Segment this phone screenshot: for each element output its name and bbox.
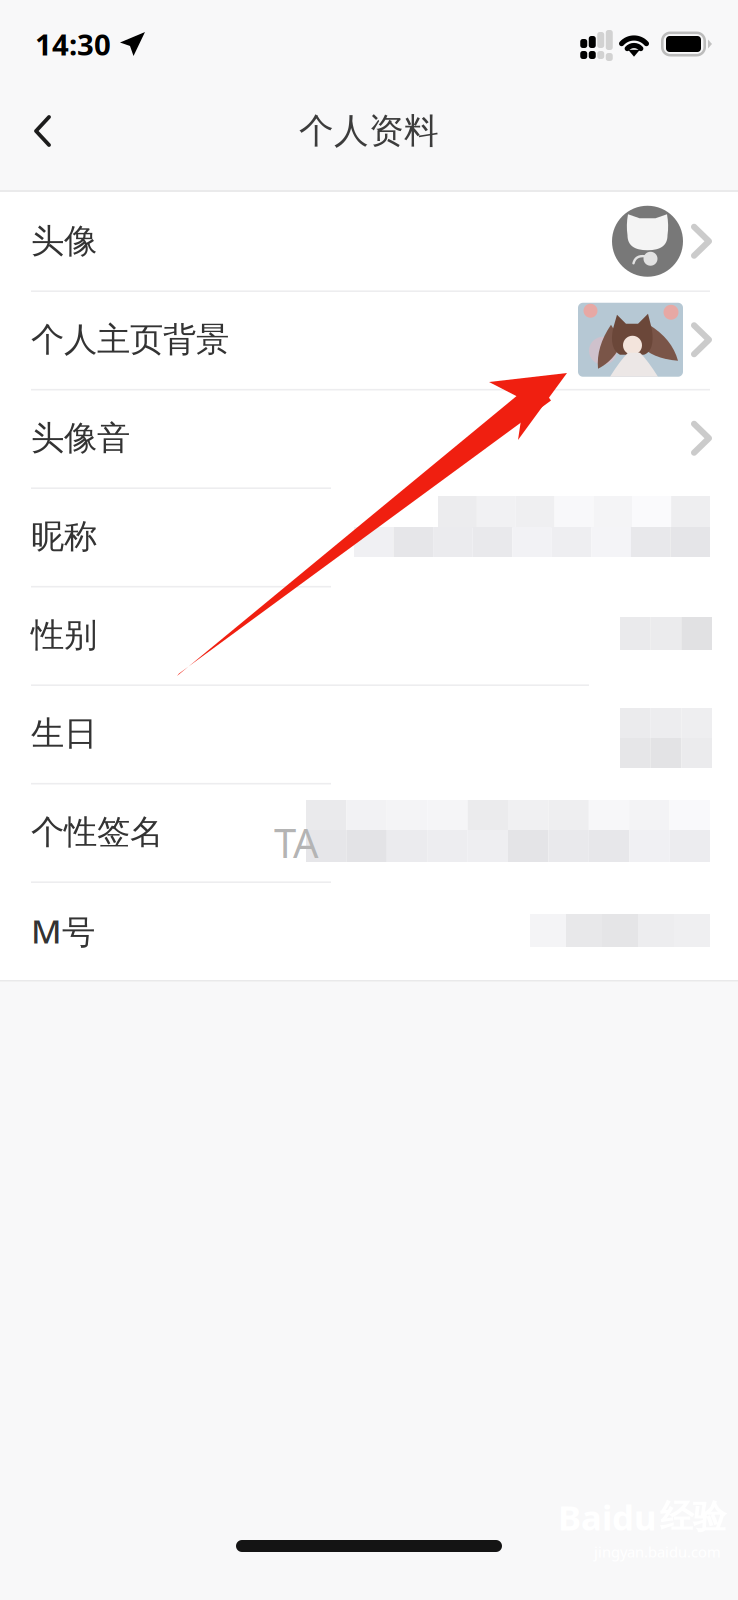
button[interactable]: Back xyxy=(12,98,74,164)
staticText: 个性签名 xyxy=(31,812,163,853)
staticText: 个人资料 xyxy=(299,110,439,152)
button[interactable]: M号 xyxy=(0,881,738,980)
button[interactable]: 性别 xyxy=(0,586,738,684)
button[interactable]: 个人主页背景 xyxy=(0,290,738,389)
staticText: M号 xyxy=(31,908,95,953)
button[interactable]: 生日 xyxy=(0,684,738,783)
staticText: 昵称 xyxy=(31,516,97,557)
button[interactable]: 头像音 xyxy=(0,389,738,487)
button[interactable]: 个性签名 xyxy=(0,783,738,881)
staticText: 个人主页背景 xyxy=(31,319,229,360)
staticText: 头像音 xyxy=(31,418,130,459)
staticText: 头像 xyxy=(31,221,97,262)
staticText: TA xyxy=(274,816,319,869)
button[interactable]: 头像 xyxy=(0,192,738,290)
staticText: 14:30 xyxy=(35,24,111,63)
staticText: 经验 xyxy=(660,1496,726,1537)
button[interactable]: 昵称 xyxy=(0,487,738,586)
staticText: 性别 xyxy=(31,615,97,656)
staticText: 生日 xyxy=(31,713,97,754)
